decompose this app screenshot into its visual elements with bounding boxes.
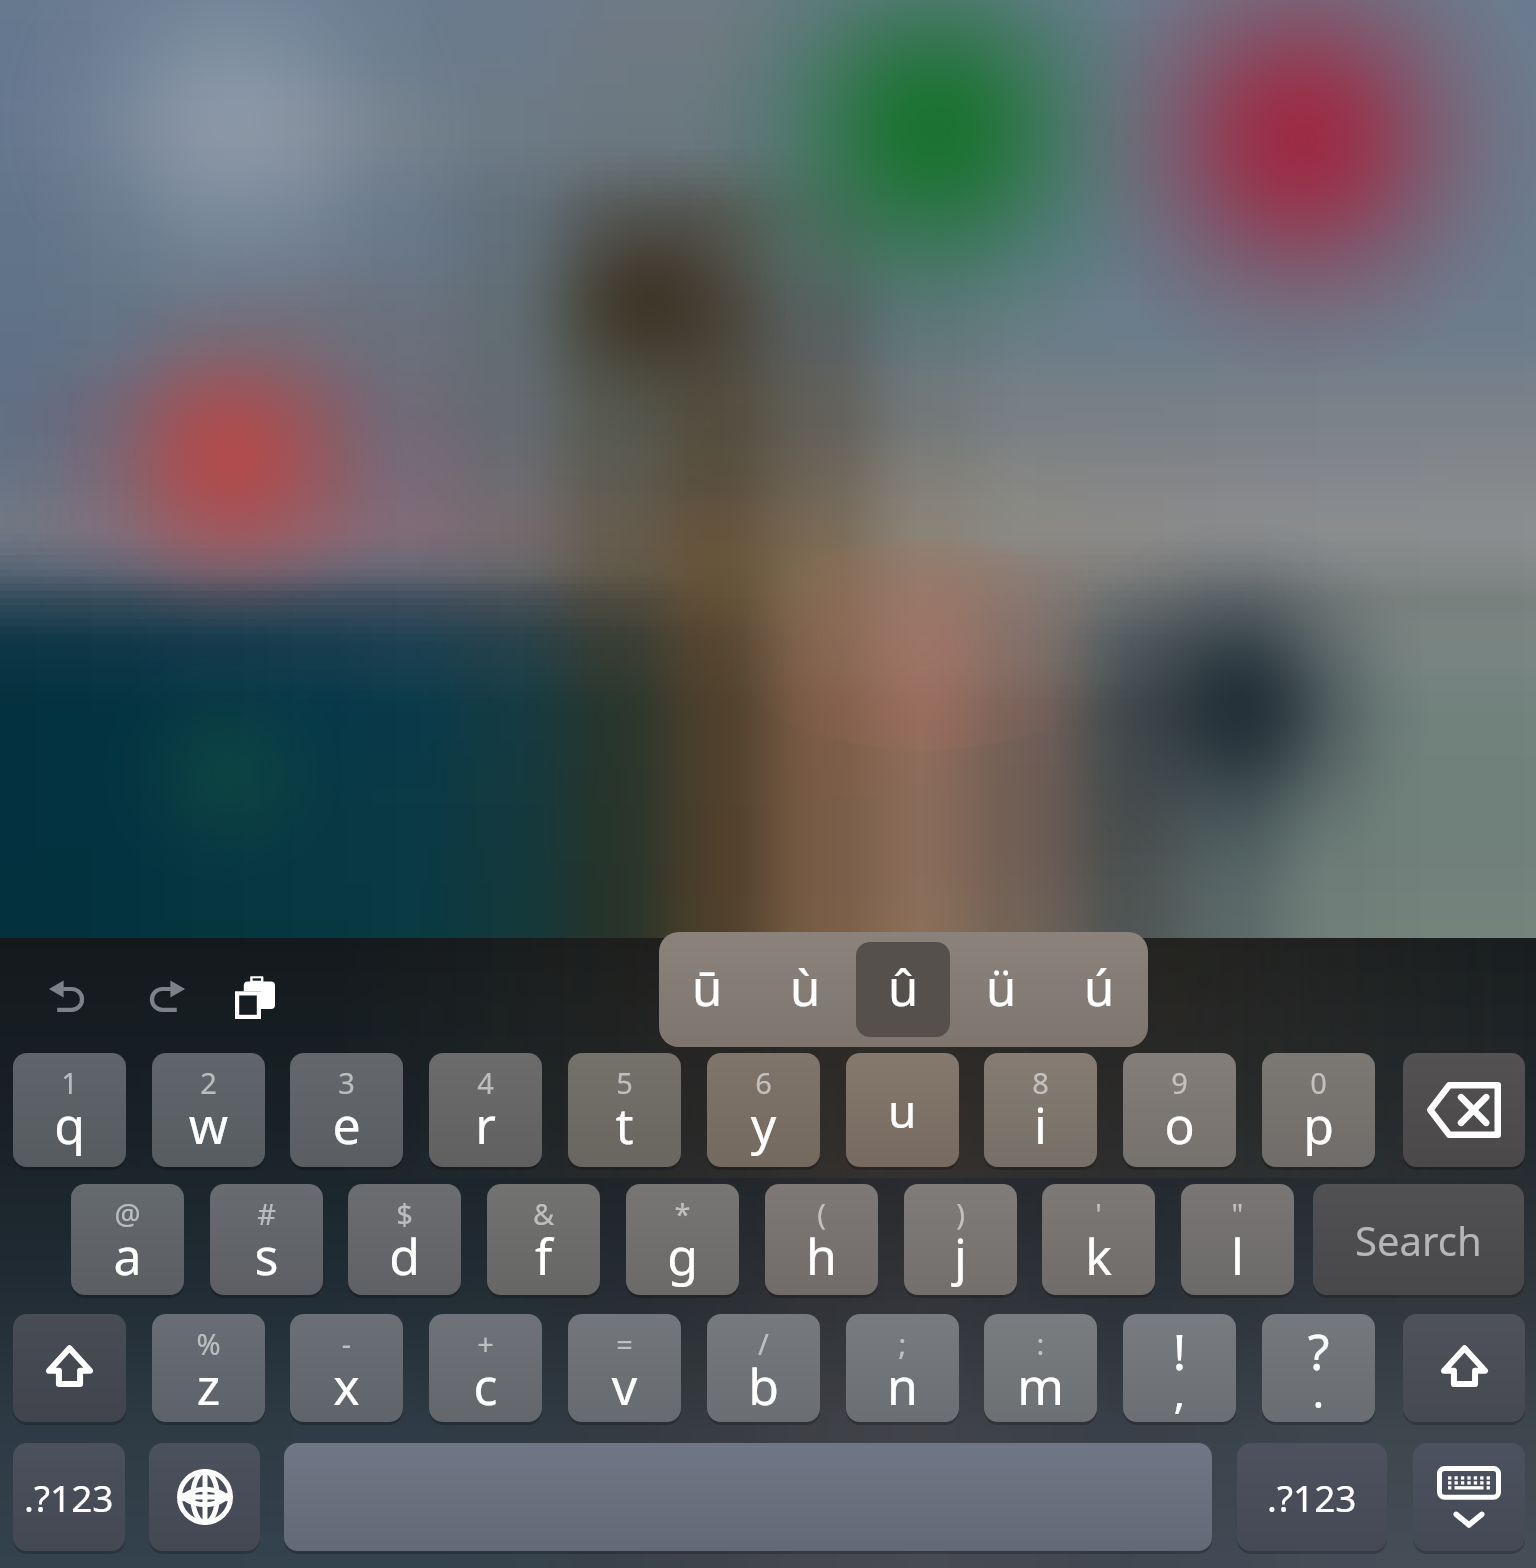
staticText: @ bbox=[71, 1194, 184, 1233]
staticText: h bbox=[765, 1222, 878, 1290]
button[interactable]: Space bbox=[284, 1443, 1212, 1551]
staticText: x bbox=[290, 1352, 403, 1420]
staticText: ) bbox=[904, 1194, 1017, 1233]
button[interactable]: u bbox=[846, 1053, 959, 1167]
button[interactable]: " bbox=[1181, 1184, 1294, 1295]
button[interactable]: @ bbox=[71, 1184, 184, 1295]
button[interactable]: / bbox=[707, 1314, 820, 1422]
staticText: a bbox=[71, 1222, 184, 1290]
button[interactable]: 8 bbox=[984, 1053, 1097, 1167]
button[interactable]: 3 bbox=[290, 1053, 403, 1167]
button[interactable]: Hide keyboard bbox=[1413, 1443, 1525, 1551]
staticText: & bbox=[487, 1194, 600, 1233]
button[interactable]: 5 bbox=[568, 1053, 681, 1167]
staticText: ' bbox=[1042, 1194, 1155, 1233]
staticText: ; bbox=[846, 1324, 959, 1363]
button[interactable]: 1 bbox=[13, 1053, 126, 1167]
button[interactable]: Shift bbox=[1403, 1314, 1525, 1422]
button[interactable]: * bbox=[626, 1184, 739, 1295]
staticText: û bbox=[888, 954, 919, 1021]
button[interactable]: ) bbox=[904, 1184, 1017, 1295]
button[interactable]: & bbox=[487, 1184, 600, 1295]
staticText: y bbox=[707, 1091, 820, 1159]
button[interactable]: .?123 bbox=[13, 1443, 125, 1551]
staticText: n bbox=[846, 1352, 959, 1420]
staticText: 6 bbox=[707, 1063, 820, 1102]
button[interactable]: # bbox=[210, 1184, 323, 1295]
staticText: .?123 bbox=[24, 1472, 114, 1522]
button[interactable]: ; bbox=[846, 1314, 959, 1422]
staticText: 8 bbox=[984, 1063, 1097, 1102]
button[interactable]: Search bbox=[1313, 1184, 1524, 1295]
button[interactable]: . bbox=[1262, 1314, 1375, 1422]
staticText: u bbox=[888, 1079, 917, 1142]
staticText: % bbox=[152, 1324, 265, 1363]
staticText: ù bbox=[790, 954, 821, 1021]
staticText: .?123 bbox=[1267, 1472, 1357, 1522]
button[interactable]: 4 bbox=[429, 1053, 542, 1167]
staticText: t bbox=[568, 1091, 681, 1159]
button[interactable]: - bbox=[290, 1314, 403, 1422]
staticText: d bbox=[348, 1222, 461, 1290]
staticText: k bbox=[1042, 1222, 1155, 1290]
staticText: o bbox=[1123, 1091, 1236, 1159]
button[interactable]: .?123 bbox=[1237, 1443, 1387, 1551]
button[interactable]: + bbox=[429, 1314, 542, 1422]
button[interactable]: 2 bbox=[152, 1053, 265, 1167]
button[interactable]: ' bbox=[1042, 1184, 1155, 1295]
button[interactable]: % bbox=[152, 1314, 265, 1422]
staticText: = bbox=[568, 1324, 681, 1363]
button[interactable]: 6 bbox=[707, 1053, 820, 1167]
staticText: 4 bbox=[429, 1063, 542, 1102]
button[interactable]: ù bbox=[758, 942, 852, 1037]
button[interactable]: Change language bbox=[149, 1443, 260, 1551]
staticText: q bbox=[13, 1091, 126, 1159]
staticText: , bbox=[1123, 1361, 1236, 1421]
staticText: $ bbox=[348, 1194, 461, 1233]
staticText: p bbox=[1262, 1091, 1375, 1159]
button[interactable]: : bbox=[984, 1314, 1097, 1422]
staticText: - bbox=[290, 1324, 403, 1363]
staticText: Search bbox=[1355, 1213, 1482, 1267]
staticText: / bbox=[707, 1324, 820, 1363]
button[interactable]: ü bbox=[954, 942, 1048, 1037]
staticText: v bbox=[568, 1352, 681, 1420]
button[interactable]: Backspace bbox=[1403, 1053, 1525, 1167]
button[interactable]: $ bbox=[348, 1184, 461, 1295]
button[interactable]: 9 bbox=[1123, 1053, 1236, 1167]
staticText: ( bbox=[765, 1194, 878, 1233]
staticText: ū bbox=[692, 954, 723, 1021]
button[interactable]: Shift bbox=[13, 1314, 126, 1422]
staticText: ! bbox=[1123, 1317, 1236, 1385]
button[interactable]: 0 bbox=[1262, 1053, 1375, 1167]
staticText: 9 bbox=[1123, 1063, 1236, 1102]
button[interactable]: ū bbox=[661, 942, 754, 1037]
staticText: l bbox=[1181, 1222, 1294, 1290]
button[interactable]: û bbox=[856, 942, 950, 1037]
button[interactable]: Redo bbox=[115, 959, 211, 1035]
staticText: r bbox=[429, 1091, 542, 1159]
staticText: z bbox=[152, 1352, 265, 1420]
staticText: " bbox=[1181, 1194, 1294, 1233]
staticText: i bbox=[984, 1091, 1097, 1159]
staticText: ü bbox=[986, 954, 1017, 1021]
staticText: m bbox=[984, 1352, 1097, 1420]
staticText: . bbox=[1262, 1361, 1375, 1421]
button[interactable]: ú bbox=[1052, 942, 1146, 1037]
staticText: 3 bbox=[290, 1063, 403, 1102]
button[interactable]: Paste bbox=[207, 959, 303, 1035]
button[interactable]: , bbox=[1123, 1314, 1236, 1422]
button[interactable]: = bbox=[568, 1314, 681, 1422]
button[interactable]: Undo bbox=[23, 959, 119, 1035]
staticText: ú bbox=[1084, 954, 1115, 1021]
staticText: ? bbox=[1262, 1317, 1375, 1385]
staticText: 5 bbox=[568, 1063, 681, 1102]
staticText: e bbox=[290, 1091, 403, 1159]
button[interactable]: ( bbox=[765, 1184, 878, 1295]
staticText: b bbox=[707, 1352, 820, 1420]
staticText: + bbox=[429, 1324, 542, 1363]
staticText: w bbox=[152, 1091, 265, 1159]
staticText: c bbox=[429, 1352, 542, 1420]
staticText: g bbox=[626, 1222, 739, 1290]
staticText: f bbox=[487, 1222, 600, 1290]
